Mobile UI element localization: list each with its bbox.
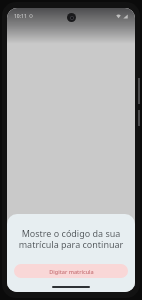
staticText: Digitar matrícula: [49, 268, 94, 275]
button[interactable]: Digitar matrícula: [14, 264, 128, 278]
staticText: 10:11: [14, 13, 27, 20]
staticText: Mostre o código da sua matrícula para co…: [14, 227, 128, 251]
other: Home gesture handle: [52, 286, 90, 288]
